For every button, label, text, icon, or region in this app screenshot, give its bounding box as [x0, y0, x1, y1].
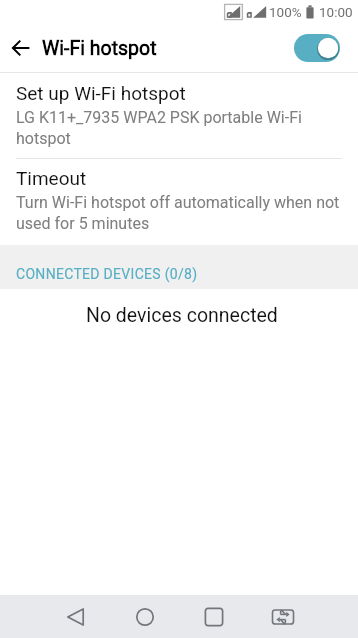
button[interactable]: Recent apps [200, 595, 228, 638]
button[interactable]: Back [62, 595, 90, 638]
staticText: CONNECTED DEVICES (0/8) [16, 266, 198, 282]
button[interactable]: Wi-Fi hotspot on [294, 34, 340, 62]
staticText: Turn Wi-Fi hotspot off automatically whe… [16, 193, 342, 233]
staticText: Set up Wi-Fi hotspot [16, 82, 186, 104]
button[interactable]: Navigate up [0, 24, 42, 72]
staticText: Timeout [16, 167, 87, 189]
staticText: No devices connected [86, 304, 278, 327]
staticText: 10:00 [319, 4, 353, 20]
staticText: 100% [269, 4, 302, 20]
button[interactable]: Home [131, 595, 159, 638]
button[interactable]: Timeout [0, 159, 358, 245]
button[interactable]: Dual window [269, 595, 297, 638]
staticText: LG K11+_7935 WPA2 PSK portable Wi-Fi hot… [16, 108, 342, 148]
button[interactable]: Set up Wi-Fi hotspot [0, 73, 358, 158]
staticText: Wi-Fi hotspot [42, 37, 157, 60]
